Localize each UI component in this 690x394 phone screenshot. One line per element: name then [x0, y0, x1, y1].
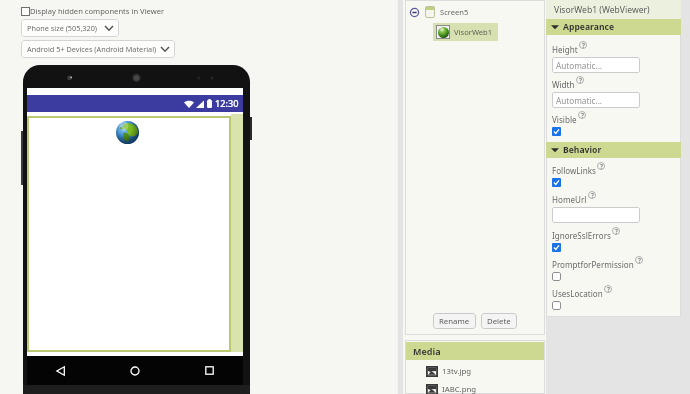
staticText: ?: [582, 41, 585, 49]
staticText: Behavior: [563, 144, 602, 156]
staticText: Automatic...: [556, 95, 603, 106]
staticText: Screen5: [440, 7, 469, 17]
button[interactable]: Automatic...: [552, 92, 640, 108]
staticText: VisorWeb1: [454, 27, 493, 37]
button[interactable]: [552, 178, 561, 187]
staticText: ?: [600, 162, 603, 170]
staticText: Visible: [552, 114, 577, 125]
staticText: FollowLinks: [552, 165, 596, 176]
other: Collapse Screen5: [410, 8, 419, 17]
button[interactable]: Automatic...: [552, 57, 640, 73]
button[interactable]: [552, 272, 561, 281]
button[interactable]: Display hidden components in Viewer: [21, 6, 165, 16]
button[interactable]: Recent apps: [205, 366, 214, 375]
button[interactable]: Android 5+ Devices (Android Material): [21, 40, 175, 58]
button[interactable]: [552, 207, 640, 223]
button[interactable]: Help for Width: [576, 76, 584, 84]
button[interactable]: Help for Height: [579, 41, 587, 49]
button[interactable]: Help for UsesLocation: [604, 285, 612, 293]
staticText: VisorWeb1 (WebViewer): [554, 4, 650, 16]
staticText: 12:30: [215, 97, 239, 110]
staticText: Appearance: [563, 21, 615, 33]
staticText: Display hidden components in Viewer: [30, 6, 165, 16]
button[interactable]: Help for PromptforPermission: [635, 256, 643, 264]
button[interactable]: [552, 301, 561, 310]
button[interactable]: Home: [130, 366, 140, 376]
button[interactable]: [552, 127, 561, 136]
staticText: 13tv.jpg: [442, 366, 472, 377]
button[interactable]: Behavior: [546, 142, 681, 158]
staticText: PromptforPermission: [552, 259, 634, 270]
button[interactable]: Help for Visible: [578, 111, 586, 119]
staticText: HomeUrl: [552, 194, 587, 205]
button[interactable]: Back: [56, 366, 65, 376]
staticText: ?: [579, 76, 582, 84]
staticText: ?: [615, 227, 618, 235]
staticText: Height: [552, 44, 578, 55]
staticText: IgnoreSslErrors: [552, 230, 611, 241]
button[interactable]: Delete: [481, 313, 517, 329]
staticText: Automatic...: [556, 60, 603, 71]
staticText: Phone size (505,320): [27, 23, 98, 33]
staticText: ?: [581, 111, 584, 119]
staticText: UsesLocation: [552, 288, 603, 299]
staticText: Android 5+ Devices (Android Material): [27, 44, 157, 54]
staticText: ?: [607, 285, 610, 293]
button[interactable]: Phone size (505,320): [21, 19, 119, 37]
button[interactable]: Rename: [433, 313, 476, 329]
staticText: Rename: [439, 316, 470, 327]
button[interactable]: Help for IgnoreSslErrors: [612, 227, 620, 235]
button[interactable]: [552, 243, 561, 252]
staticText: Delete: [487, 316, 511, 327]
button[interactable]: Collapse Screen5: [410, 6, 469, 18]
staticText: Media: [413, 345, 441, 357]
staticText: IABC.png: [442, 384, 477, 394]
staticText: ?: [638, 256, 641, 264]
button[interactable]: Appearance: [546, 19, 681, 35]
button[interactable]: Help for HomeUrl: [588, 191, 596, 199]
button[interactable]: Help for FollowLinks: [597, 162, 605, 170]
staticText: ?: [591, 191, 594, 199]
staticText: Width: [552, 79, 575, 90]
button[interactable]: VisorWeb1: [433, 23, 498, 41]
button[interactable]: IABC.png: [426, 384, 477, 394]
button[interactable]: 13tv.jpg: [426, 366, 472, 377]
